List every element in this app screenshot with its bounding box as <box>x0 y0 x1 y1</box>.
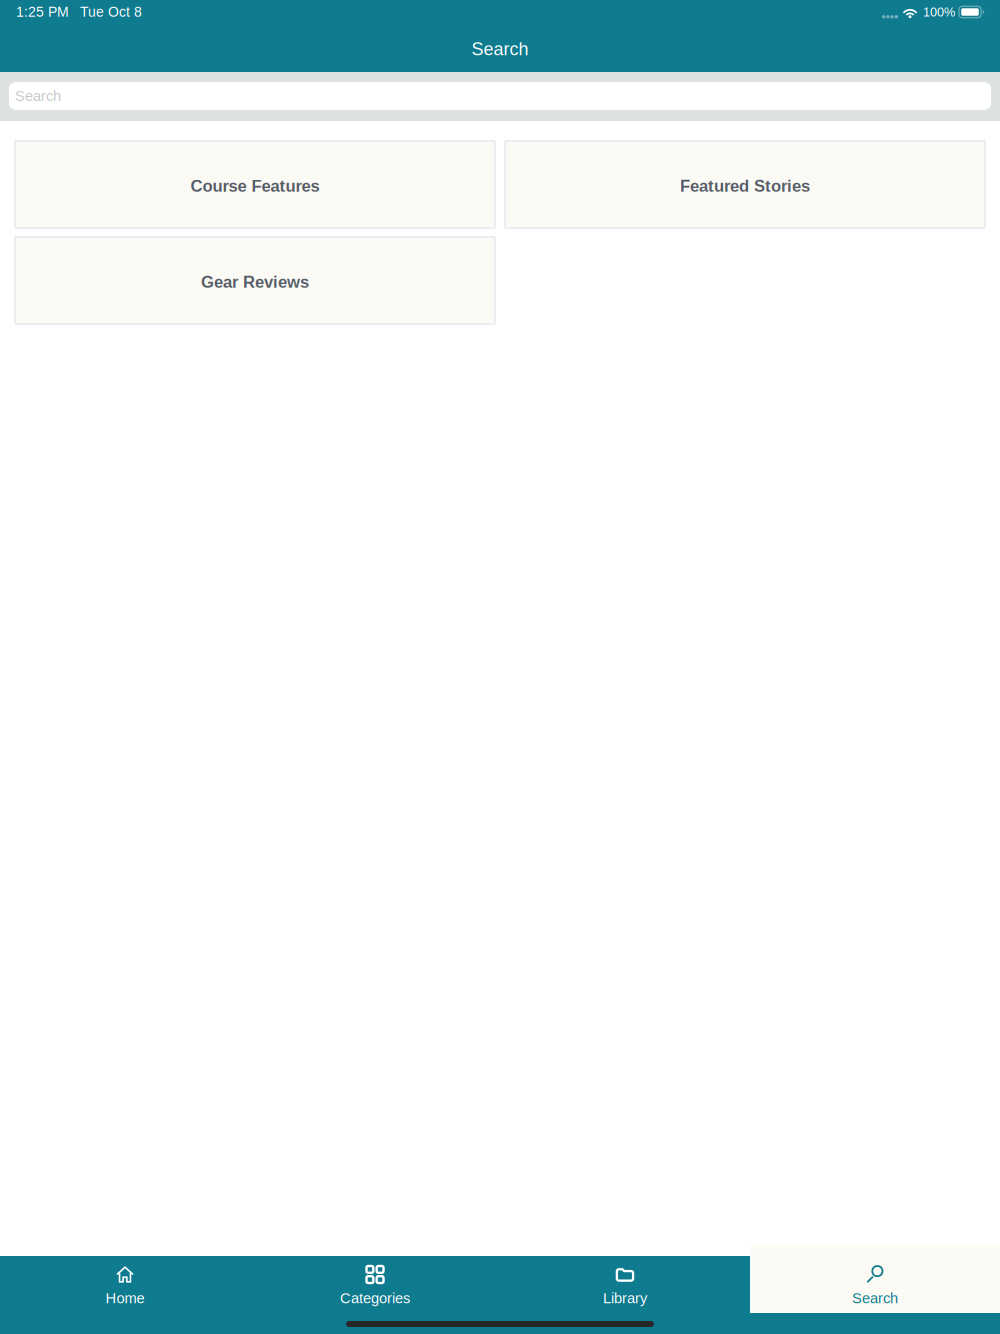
staticText: Course Features <box>190 177 319 195</box>
button[interactable]: Search <box>9 82 991 110</box>
staticText: Featured Stories <box>680 177 810 195</box>
button[interactable]: Course Features <box>15 141 495 228</box>
staticText: Search <box>852 1290 898 1306</box>
staticText: Tue Oct 8 <box>80 4 142 20</box>
staticText: Categories <box>340 1290 410 1306</box>
button[interactable]: Categories <box>250 1245 500 1313</box>
staticText: Library <box>603 1290 647 1306</box>
button[interactable]: Search <box>750 1245 1000 1313</box>
button[interactable]: Featured Stories <box>505 141 985 228</box>
staticText: Search <box>15 88 61 104</box>
button[interactable]: Library <box>500 1245 750 1313</box>
button[interactable]: Gear Reviews <box>15 237 495 324</box>
staticText: Home <box>105 1290 144 1306</box>
button[interactable]: Home <box>0 1245 250 1313</box>
staticText: Search <box>471 39 528 59</box>
staticText: 1:25 PM <box>16 4 69 20</box>
staticText: 100% <box>923 5 955 19</box>
staticText: Gear Reviews <box>201 273 309 291</box>
